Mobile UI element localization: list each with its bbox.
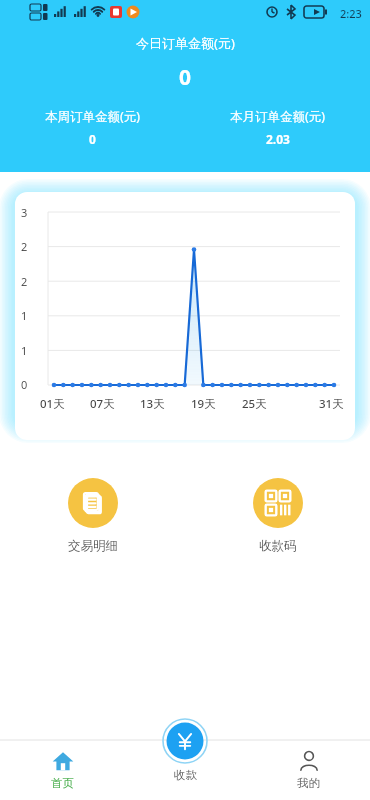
- staticText: 25天: [242, 396, 267, 412]
- staticText: 首页: [51, 776, 74, 790]
- staticText: 3: [21, 205, 28, 220]
- staticText: 31天: [319, 396, 344, 412]
- staticText: 1: [21, 343, 28, 358]
- staticText: 2:23: [340, 6, 362, 21]
- staticText: 0: [89, 131, 96, 147]
- staticText: 收款码: [259, 538, 297, 554]
- staticText: 交易明细: [68, 538, 118, 554]
- staticText: 2: [21, 274, 28, 289]
- staticText: 0: [179, 63, 192, 92]
- staticText: 0: [21, 377, 28, 392]
- staticText: 1: [21, 308, 28, 323]
- staticText: 2: [21, 239, 28, 254]
- staticText: 本周订单金额(元): [45, 108, 141, 125]
- staticText: 今日订单金额(元): [136, 34, 235, 52]
- staticText: 2.03: [266, 131, 290, 147]
- staticText: 01天: [40, 396, 65, 412]
- button[interactable]: 收款码: [249, 474, 307, 558]
- button[interactable]: 收款: [162, 718, 208, 782]
- button[interactable]: 交易明细: [64, 474, 122, 558]
- staticText: 13天: [140, 396, 165, 412]
- staticText: 我的: [297, 776, 320, 790]
- staticText: 收款: [174, 768, 197, 782]
- staticText: 07天: [90, 396, 115, 412]
- button[interactable]: 首页: [35, 746, 90, 794]
- staticText: 19天: [191, 396, 216, 412]
- staticText: 本月订单金额(元): [230, 108, 326, 125]
- button[interactable]: 我的: [281, 746, 336, 794]
